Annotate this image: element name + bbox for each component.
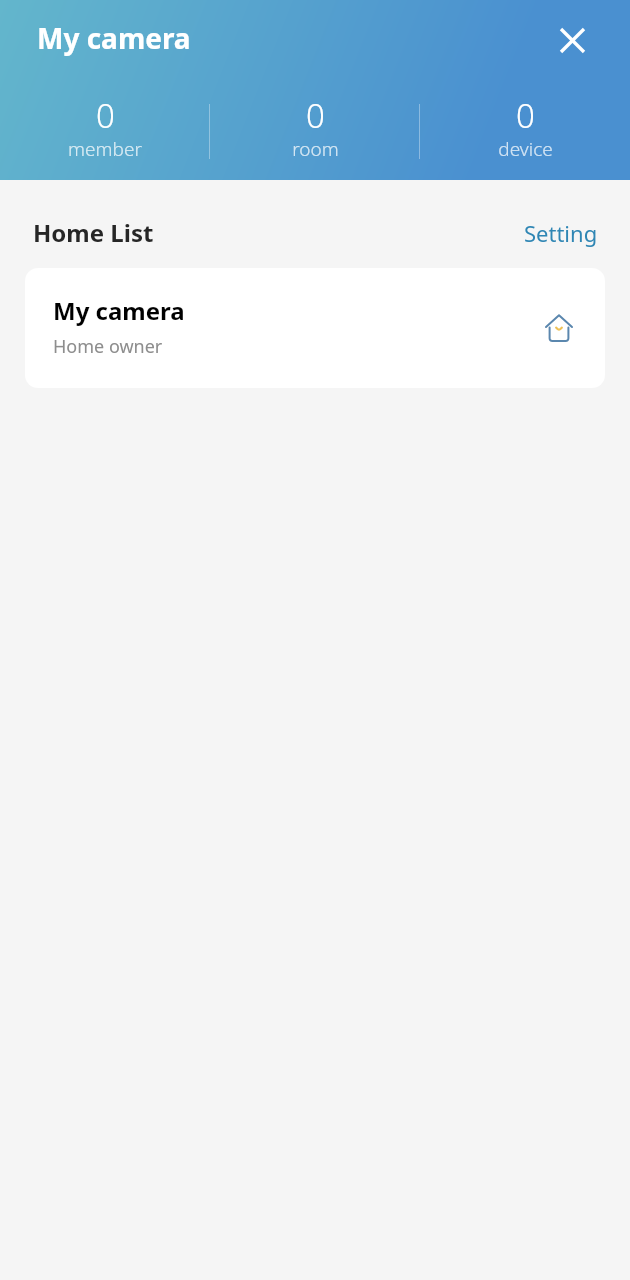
button[interactable]: 0 [0, 91, 210, 162]
staticText: 0 [96, 93, 115, 138]
other: Home [539, 309, 579, 349]
staticText: Home owner [53, 334, 163, 359]
staticText: My camera [53, 294, 185, 327]
button[interactable]: 0 [210, 91, 420, 162]
staticText: Setting [524, 218, 598, 248]
button[interactable]: Close [545, 13, 599, 67]
staticText: Home List [33, 216, 154, 249]
staticText: device [498, 136, 553, 162]
staticText: 0 [306, 93, 325, 138]
staticText: 0 [516, 93, 535, 138]
staticText: member [68, 136, 142, 162]
button[interactable]: My camera [25, 268, 605, 388]
button[interactable]: Setting [507, 203, 615, 263]
staticText: My camera [37, 19, 191, 57]
button[interactable]: 0 [420, 91, 630, 162]
staticText: room [292, 136, 339, 162]
